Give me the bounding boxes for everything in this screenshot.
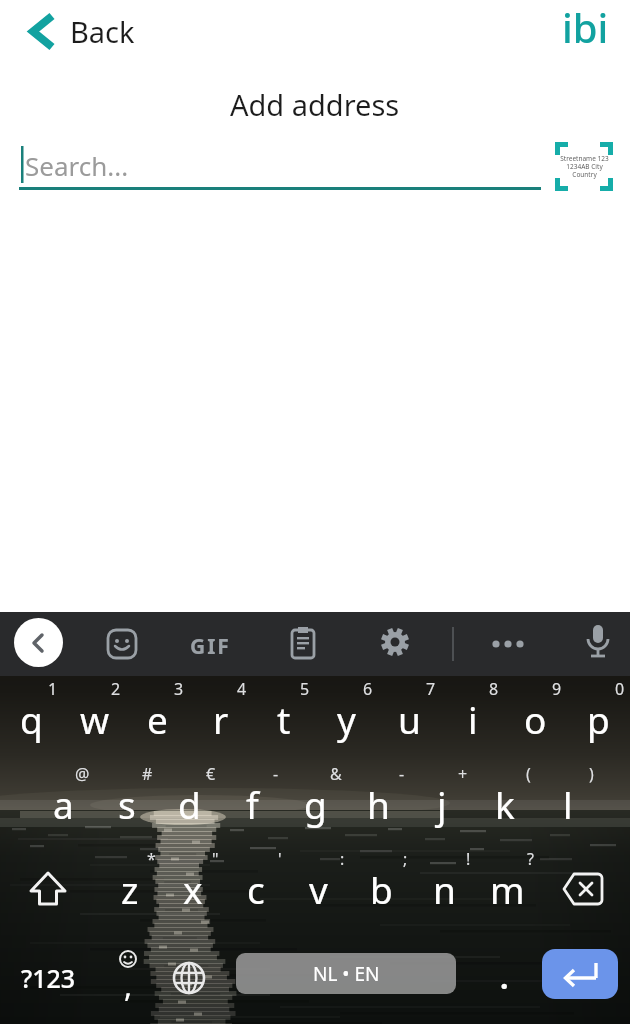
button[interactable] (542, 949, 618, 999)
staticText: € (206, 763, 216, 785)
staticText: j (437, 779, 447, 829)
staticText: ( (526, 763, 531, 785)
button[interactable]: p (567, 676, 630, 761)
button[interactable]: z (98, 846, 161, 931)
button[interactable] (582, 623, 614, 665)
button[interactable]: , (97, 931, 159, 1024)
staticText: ' (278, 848, 282, 870)
button[interactable]: s (95, 761, 158, 846)
staticText: ; (403, 848, 408, 870)
staticText: 0 (615, 678, 625, 700)
staticText: k (495, 779, 515, 829)
staticText: 5 (300, 678, 310, 700)
button[interactable]: a (32, 761, 95, 846)
button[interactable]: n (413, 846, 476, 931)
button[interactable]: . (476, 931, 532, 1024)
staticText: i (468, 694, 478, 744)
staticText: # (142, 763, 153, 785)
staticText: . (500, 957, 509, 998)
staticText: 6 (363, 678, 373, 700)
button[interactable]: w (63, 676, 126, 761)
staticText: u (398, 694, 421, 744)
staticText: 9 (552, 678, 562, 700)
button[interactable]: v (287, 846, 350, 931)
staticText: + (458, 763, 468, 785)
staticText: - (399, 763, 405, 785)
button[interactable]: e (126, 676, 189, 761)
staticText: h (367, 779, 390, 829)
button[interactable]: t (252, 676, 315, 761)
button[interactable]: x (161, 846, 224, 931)
button[interactable]: ?123 (8, 931, 88, 1024)
button[interactable]: b (350, 846, 413, 931)
button[interactable]: GIF (190, 632, 231, 661)
staticText: c (247, 864, 265, 914)
button[interactable]: o (504, 676, 567, 761)
staticText: Search... (25, 148, 129, 183)
button[interactable] (378, 625, 412, 659)
button[interactable]: g (284, 761, 347, 846)
staticText: ! (466, 848, 471, 870)
staticText: Add address (230, 85, 400, 124)
button[interactable] (8, 846, 87, 931)
button[interactable]: h (347, 761, 410, 846)
staticText: t (277, 694, 291, 744)
staticText: x (183, 864, 203, 914)
staticText: * (147, 848, 156, 870)
button[interactable]: f (221, 761, 284, 846)
staticText: l (563, 779, 573, 829)
staticText: " (212, 848, 219, 870)
button[interactable]: NL • EN (236, 953, 456, 994)
staticText: e (147, 694, 168, 744)
staticText: m (490, 864, 525, 914)
staticText: d (178, 779, 201, 829)
button[interactable]: c (224, 846, 287, 931)
button[interactable] (159, 931, 219, 1024)
staticText: 2 (111, 678, 121, 700)
staticText: w (80, 694, 110, 744)
staticText: y (337, 694, 356, 744)
button[interactable]: Streetname 123 1234AB City Country (553, 141, 615, 192)
button[interactable]: k (473, 761, 536, 846)
button[interactable] (490, 636, 526, 652)
staticText: q (20, 694, 43, 744)
button[interactable] (543, 846, 622, 931)
staticText: ? (527, 848, 534, 870)
button[interactable]: u (378, 676, 441, 761)
button[interactable]: q (0, 676, 63, 761)
button[interactable]: l (536, 761, 599, 846)
staticText: & (330, 763, 342, 785)
staticText: 8 (489, 678, 499, 700)
staticText: - (273, 763, 279, 785)
staticText: , (124, 965, 133, 1006)
button[interactable] (14, 618, 63, 667)
button[interactable]: d (158, 761, 221, 846)
staticText: 7 (426, 678, 436, 700)
staticText: v (309, 864, 328, 914)
staticText: p (587, 694, 610, 744)
button[interactable] (286, 625, 320, 659)
staticText: 1 (48, 678, 58, 700)
button[interactable]: Back (18, 8, 148, 56)
button[interactable]: ibi (562, 0, 609, 54)
staticText: b (370, 864, 393, 914)
button[interactable]: i (441, 676, 504, 761)
staticText: s (118, 779, 136, 829)
staticText: 4 (237, 678, 247, 700)
button[interactable]: m (476, 846, 539, 931)
staticText: r (213, 694, 229, 744)
staticText: 3 (174, 678, 184, 700)
button[interactable] (104, 626, 140, 662)
staticText: @ (75, 763, 90, 785)
button[interactable]: j (410, 761, 473, 846)
staticText: f (246, 779, 259, 829)
staticText: Streetname 123 1234AB City Country (560, 154, 609, 179)
staticText: o (524, 694, 547, 744)
staticText: NL • EN (313, 961, 380, 987)
button[interactable]: Search... (19, 140, 541, 192)
button[interactable]: r (189, 676, 252, 761)
staticText: : (340, 848, 345, 870)
button[interactable]: y (315, 676, 378, 761)
staticText: z (121, 864, 139, 914)
staticText: a (53, 779, 74, 829)
